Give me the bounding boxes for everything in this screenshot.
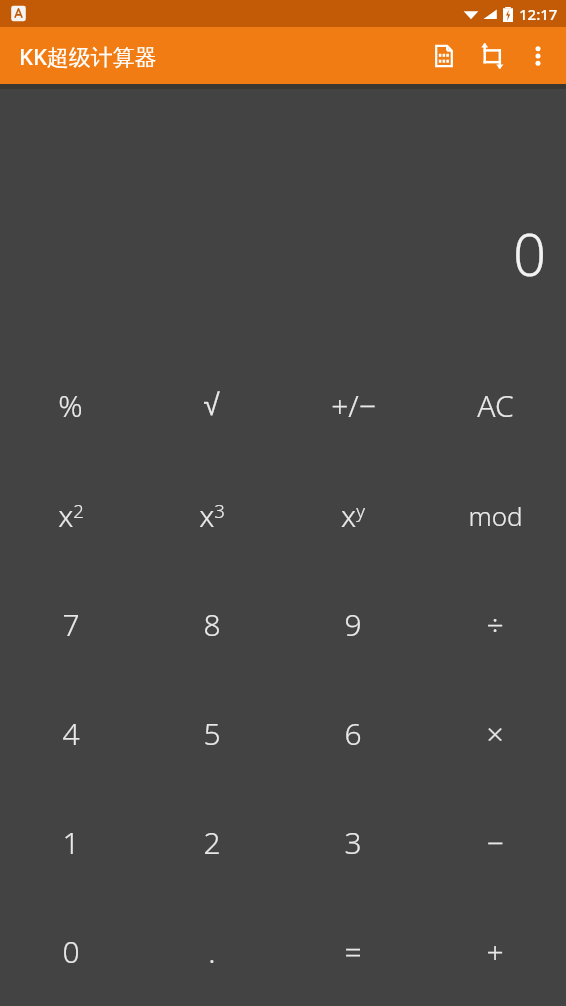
button[interactable]: × bbox=[424, 679, 566, 788]
button[interactable]: x2 bbox=[0, 460, 141, 570]
button[interactable]: 7 bbox=[0, 570, 141, 679]
button[interactable]: ÷ bbox=[424, 570, 566, 679]
staticText: 0 bbox=[512, 214, 546, 293]
button[interactable]: +/− bbox=[282, 350, 424, 460]
button[interactable]: Unit converter bbox=[468, 32, 516, 80]
button[interactable]: 5 bbox=[141, 679, 282, 788]
button[interactable]: 8 bbox=[141, 570, 282, 679]
button[interactable]: 2 bbox=[141, 788, 282, 897]
staticText: 1 bbox=[62, 822, 80, 863]
staticText: 2 bbox=[203, 822, 221, 863]
button[interactable]: + bbox=[424, 897, 566, 1006]
staticText: 0 bbox=[62, 931, 80, 972]
staticText: KK超级计算器 bbox=[19, 41, 157, 71]
staticText: 3 bbox=[344, 822, 362, 863]
staticText: x2 bbox=[58, 495, 84, 536]
staticText: × bbox=[486, 713, 504, 754]
button[interactable]: 9 bbox=[282, 570, 424, 679]
staticText: AC bbox=[477, 385, 514, 426]
button[interactable]: − bbox=[424, 788, 566, 897]
button[interactable]: 6 bbox=[282, 679, 424, 788]
button[interactable]: 3 bbox=[282, 788, 424, 897]
staticText: 6 bbox=[344, 713, 362, 754]
staticText: +/− bbox=[331, 385, 376, 426]
staticText: 9 bbox=[344, 604, 362, 645]
staticText: % bbox=[58, 385, 83, 426]
staticText: 7 bbox=[62, 604, 80, 645]
button[interactable]: 4 bbox=[0, 679, 141, 788]
button[interactable]: √ bbox=[141, 350, 282, 460]
staticText: . bbox=[208, 931, 216, 972]
staticText: − bbox=[486, 822, 504, 863]
staticText: ÷ bbox=[486, 604, 504, 645]
button[interactable]: mod bbox=[424, 460, 566, 570]
staticText: 5 bbox=[203, 713, 221, 754]
button[interactable]: Binary converter bbox=[420, 32, 468, 80]
button[interactable]: AC bbox=[424, 350, 566, 460]
button[interactable]: . bbox=[141, 897, 282, 1006]
button[interactable]: 1 bbox=[0, 788, 141, 897]
button[interactable]: x3 bbox=[141, 460, 282, 570]
staticText: xy bbox=[341, 495, 365, 536]
staticText: 8 bbox=[203, 604, 221, 645]
staticText: x3 bbox=[199, 495, 225, 536]
button[interactable]: = bbox=[282, 897, 424, 1006]
button[interactable]: xy bbox=[282, 460, 424, 570]
button[interactable]: More options bbox=[516, 34, 560, 78]
button[interactable]: 0 bbox=[0, 897, 141, 1006]
staticText: 4 bbox=[62, 713, 80, 754]
staticText: = bbox=[344, 931, 362, 972]
button[interactable]: % bbox=[0, 350, 141, 460]
staticText: + bbox=[486, 931, 504, 972]
staticText: 12:17 bbox=[519, 4, 558, 24]
staticText: mod bbox=[468, 498, 523, 533]
staticText: √ bbox=[203, 388, 220, 422]
